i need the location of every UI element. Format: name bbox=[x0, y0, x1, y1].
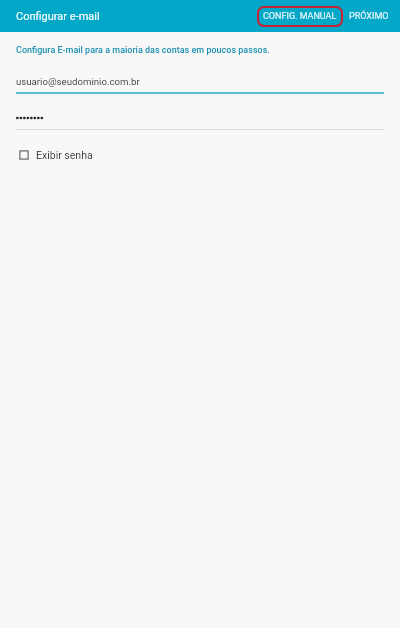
button[interactable]: PRÓXIMO bbox=[348, 7, 390, 26]
button[interactable]: Exibir senha bbox=[0, 147, 103, 163]
button[interactable]: CONFIG. MANUAL bbox=[257, 6, 343, 27]
staticText: usuario@seudominio.com.br bbox=[16, 76, 140, 87]
staticText: Exibir senha bbox=[36, 149, 93, 161]
staticText: Configura E-mail para a maioria das cont… bbox=[16, 45, 270, 56]
button[interactable]: Senha bbox=[0, 108, 400, 132]
staticText: CONFIG. MANUAL bbox=[263, 11, 337, 22]
staticText: PRÓXIMO bbox=[349, 11, 389, 22]
staticText: Configurar e-mail bbox=[16, 10, 100, 23]
button[interactable]: usuario@seudominio.com.br bbox=[0, 68, 400, 94]
